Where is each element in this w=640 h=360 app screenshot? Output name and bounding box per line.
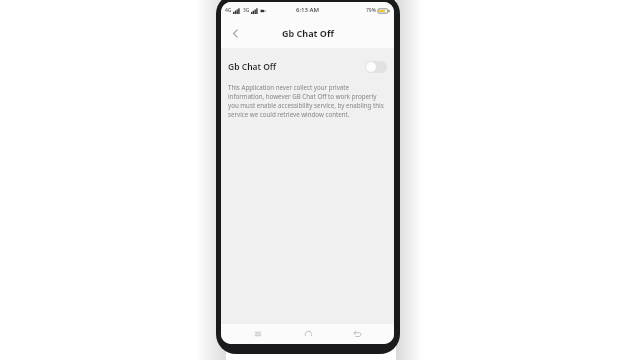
staticText: Gb Chat Off [228,61,277,73]
staticText: 79% [366,7,376,14]
button[interactable]: Gb Chat Off [221,54,394,80]
staticText: Gb Chat Off [282,27,334,39]
staticText: 4G [225,7,232,14]
button[interactable]: Back [345,324,369,344]
staticText: 3G [243,7,250,14]
staticText: 6:13 AM [296,6,320,14]
button[interactable]: Recent apps [246,324,270,344]
button[interactable]: Home [296,324,320,344]
button[interactable]: Back [223,21,247,45]
button[interactable]: Toggle Gb Chat Off [365,61,387,73]
staticText: This Application never collect your priv… [228,83,385,119]
